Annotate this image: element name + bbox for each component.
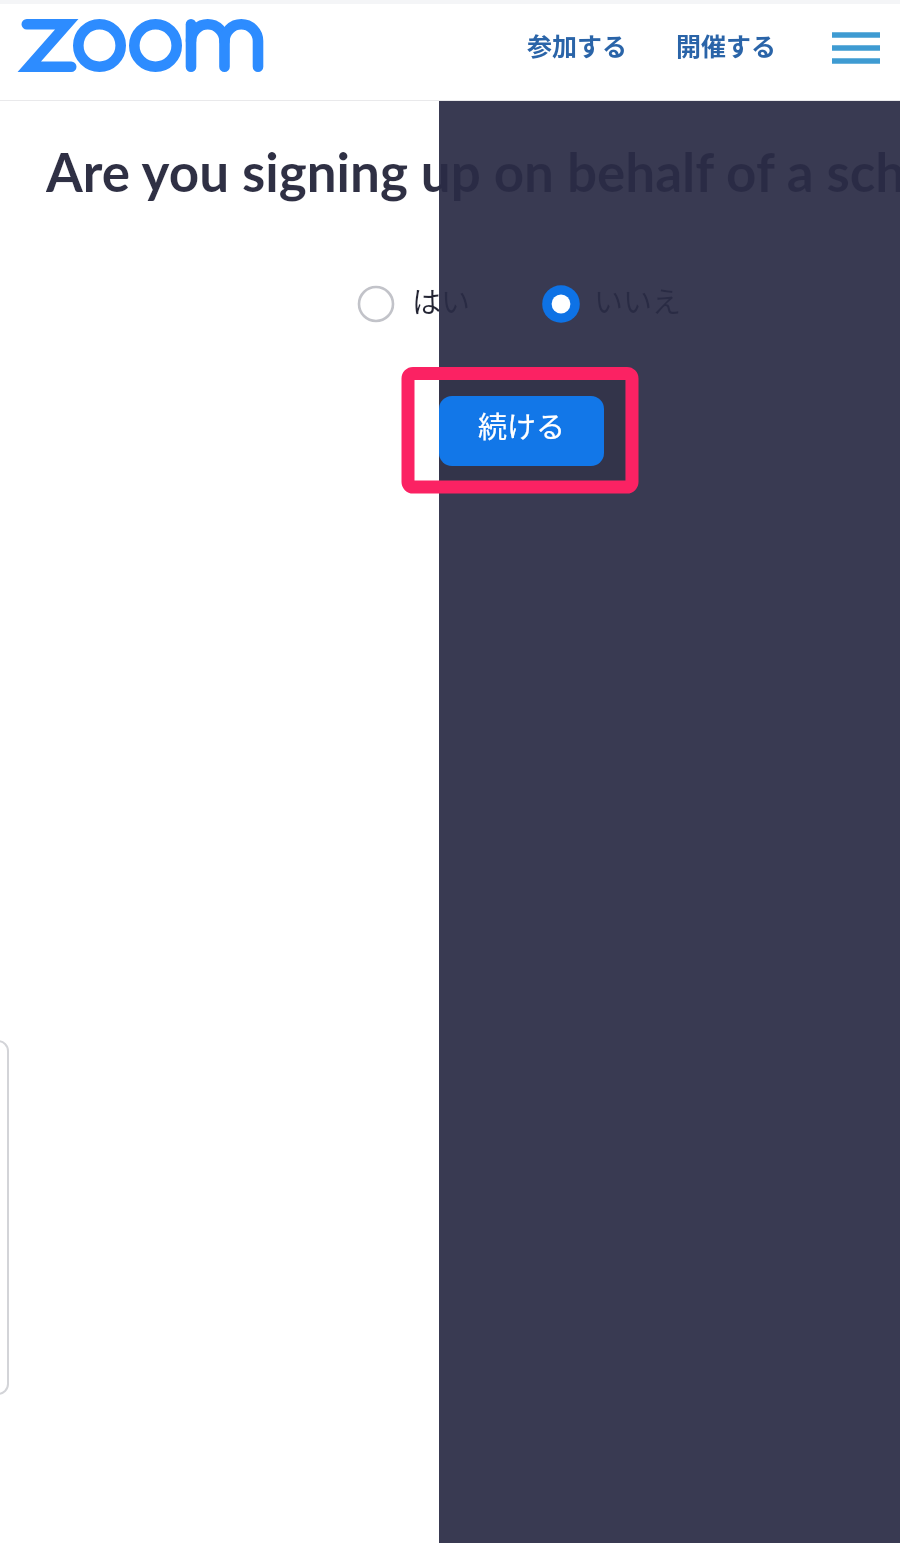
button[interactable]: Menu <box>820 16 892 78</box>
button[interactable]: 開催する <box>664 17 788 73</box>
button[interactable]: Zoom home <box>0 0 290 100</box>
staticText: いいえ <box>594 279 682 321</box>
button[interactable]: いいえ <box>542 285 580 323</box>
staticText: 続ける <box>478 404 566 446</box>
staticText: はい <box>412 279 471 321</box>
button[interactable]: はい <box>357 285 395 323</box>
staticText: 参加する <box>527 27 628 63</box>
button[interactable]: 続ける <box>439 396 604 466</box>
staticText: Are you signing up on behalf of a school… <box>46 140 900 204</box>
staticText: 開催する <box>676 27 777 63</box>
button[interactable]: 参加する <box>515 17 639 73</box>
